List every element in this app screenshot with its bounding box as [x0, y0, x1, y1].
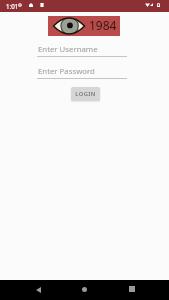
- button[interactable]: Recent apps: [121, 280, 141, 300]
- staticText: LOGIN: [75, 90, 96, 98]
- staticText: Enter Username: [38, 44, 98, 55]
- staticText: Enter Password: [38, 66, 95, 77]
- button[interactable]: Enter Password: [37, 64, 127, 79]
- button[interactable]: LOGIN: [71, 87, 100, 101]
- staticText: 1984: [89, 17, 117, 33]
- staticText: 1:01: [6, 2, 19, 10]
- button[interactable]: Back: [28, 280, 48, 300]
- button[interactable]: Enter Username: [37, 42, 127, 57]
- button[interactable]: Home: [74, 280, 94, 300]
